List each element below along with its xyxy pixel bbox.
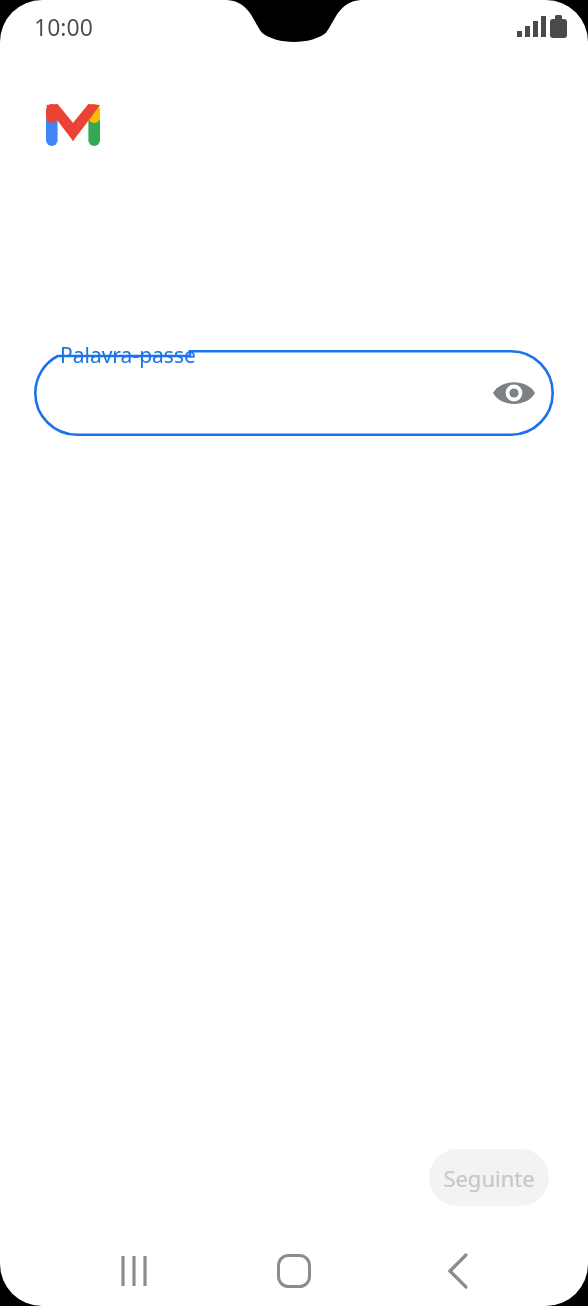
button[interactable]: Home <box>256 1241 332 1301</box>
button[interactable]: Seguinte <box>429 1149 549 1206</box>
button[interactable]: Recent apps <box>96 1241 172 1301</box>
staticText: Palavra-passe <box>60 341 196 370</box>
staticText: 10:00 <box>34 11 93 42</box>
button[interactable] <box>34 350 554 436</box>
staticText: Seguinte <box>443 1163 535 1193</box>
button[interactable]: Back <box>420 1241 496 1301</box>
